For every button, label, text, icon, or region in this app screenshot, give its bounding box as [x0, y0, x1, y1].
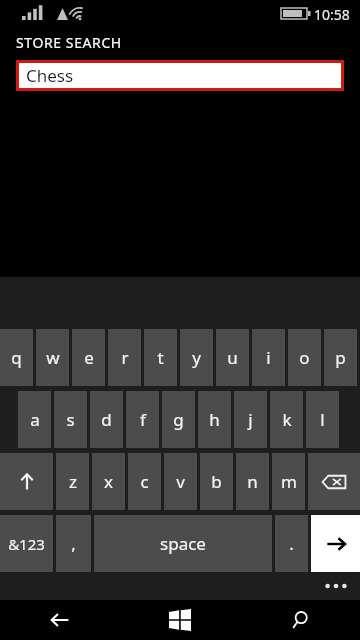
button[interactable]: More [318, 577, 354, 595]
button[interactable]: s [54, 391, 87, 448]
button[interactable]: n [236, 453, 269, 510]
staticText: 10:58 [314, 5, 350, 24]
button[interactable]: f [126, 391, 159, 448]
staticText: a [30, 408, 40, 431]
button[interactable]: . [275, 515, 308, 572]
staticText: y [192, 346, 201, 369]
staticText: u [227, 346, 238, 369]
staticText: v [176, 470, 185, 493]
staticText: f [140, 408, 146, 431]
button[interactable]: r [108, 329, 141, 386]
staticText: , [71, 532, 76, 555]
button[interactable]: p [324, 329, 357, 386]
button[interactable]: Chess [16, 60, 344, 91]
button[interactable]: i [252, 329, 285, 386]
button[interactable]: j [234, 391, 267, 448]
staticText: w [46, 346, 60, 369]
staticText: q [11, 346, 22, 369]
button[interactable]: q [0, 329, 33, 386]
staticText: space [160, 532, 206, 555]
staticText: l [320, 408, 325, 431]
staticText: i [266, 346, 271, 369]
button[interactable]: a [18, 391, 51, 448]
staticText: z [69, 470, 77, 493]
button[interactable]: v [164, 453, 197, 510]
staticText: . [289, 532, 294, 555]
button[interactable]: m [272, 453, 305, 510]
button[interactable]: Backspace [308, 453, 360, 510]
button[interactable]: t [144, 329, 177, 386]
button[interactable]: b [200, 453, 233, 510]
button[interactable]: h [198, 391, 231, 448]
staticText: m [281, 470, 297, 493]
button[interactable]: z [56, 453, 89, 510]
staticText: STORE SEARCH [16, 33, 122, 52]
button[interactable]: Enter [311, 515, 360, 572]
button[interactable]: w [36, 329, 69, 386]
button[interactable]: g [162, 391, 195, 448]
staticText: k [282, 408, 292, 431]
staticText: g [173, 408, 184, 431]
staticText: x [104, 470, 113, 493]
button[interactable]: d [90, 391, 123, 448]
staticText: j [248, 408, 253, 431]
button[interactable]: Shift [0, 453, 53, 510]
button[interactable]: &123 [0, 515, 53, 572]
button[interactable]: space [94, 515, 272, 572]
staticText: e [84, 346, 94, 369]
staticText: &123 [8, 534, 45, 554]
button[interactable]: e [72, 329, 105, 386]
staticText: t [157, 346, 164, 369]
staticText: h [209, 408, 220, 431]
staticText: n [247, 470, 258, 493]
button[interactable]: c [128, 453, 161, 510]
staticText: Chess [26, 64, 74, 87]
staticText: o [299, 346, 310, 369]
staticText: c [140, 470, 149, 493]
button[interactable]: Start [120, 600, 240, 640]
button[interactable]: Back [0, 600, 120, 640]
staticText: s [66, 408, 75, 431]
button[interactable]: , [56, 515, 91, 572]
button[interactable]: Search [240, 600, 360, 640]
staticText: p [335, 346, 346, 369]
button[interactable]: k [270, 391, 303, 448]
button[interactable]: u [216, 329, 249, 386]
button[interactable]: x [92, 453, 125, 510]
button[interactable]: y [180, 329, 213, 386]
staticText: b [211, 470, 222, 493]
staticText: r [121, 346, 129, 369]
button[interactable]: l [306, 391, 339, 448]
button[interactable]: o [288, 329, 321, 386]
staticText: d [101, 408, 112, 431]
